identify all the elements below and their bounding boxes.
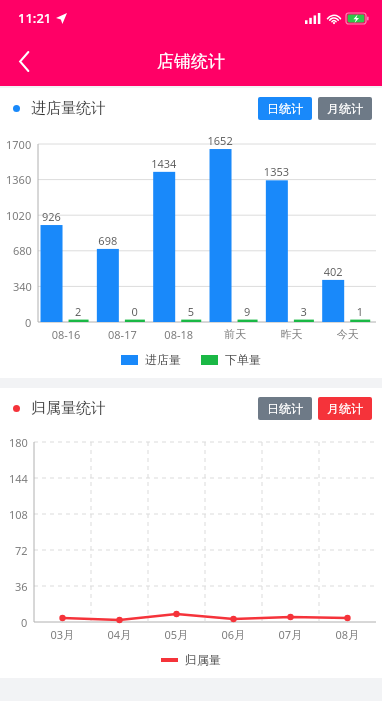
staticText: 月统计 — [327, 401, 363, 416]
staticText: 下单量 — [225, 352, 261, 367]
staticText: 店铺统计 — [157, 51, 225, 72]
button[interactable]: 月统计 — [318, 97, 372, 120]
staticText: 月统计 — [327, 101, 363, 116]
staticText: 日统计 — [267, 401, 303, 416]
button[interactable]: Back — [0, 37, 48, 85]
staticText: 进店量 — [145, 352, 181, 367]
button[interactable]: 月统计 — [318, 397, 372, 420]
staticText: 归属量统计 — [31, 399, 106, 418]
button[interactable]: 日统计 — [258, 97, 312, 120]
staticText: 进店量统计 — [31, 99, 106, 118]
staticText: 归属量 — [185, 652, 221, 667]
staticText: 日统计 — [267, 101, 303, 116]
staticText: 11:21 — [18, 9, 52, 27]
button[interactable]: 日统计 — [258, 397, 312, 420]
